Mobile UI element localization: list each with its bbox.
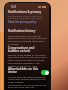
staticText: Dismissed alerts stay here for twenty fo… [8,34,47,46]
staticText: Choose which alerts reach you and what d… [8,14,47,20]
staticText: Conversations and bubbles on lock screen [8,46,38,53]
staticText: Allow bubbles on this device [8,67,39,74]
staticText: Notifications & privacy controls [8,10,49,14]
staticText: 9:41 [11,5,23,9]
staticText: Priority chats appear at the top of the … [8,53,47,68]
staticText: Notifications can be turned off for each… [8,83,47,89]
staticText: Notification history [8,29,47,33]
staticText: Certain apps can send bubbles so chats k… [8,75,47,84]
staticText: Read the privacy policy [8,20,37,24]
button[interactable]: Toggle bubbles [41,70,49,75]
button[interactable]: Notifications & privacy controls [8,10,49,15]
button[interactable]: Read the privacy policy [8,20,37,24]
